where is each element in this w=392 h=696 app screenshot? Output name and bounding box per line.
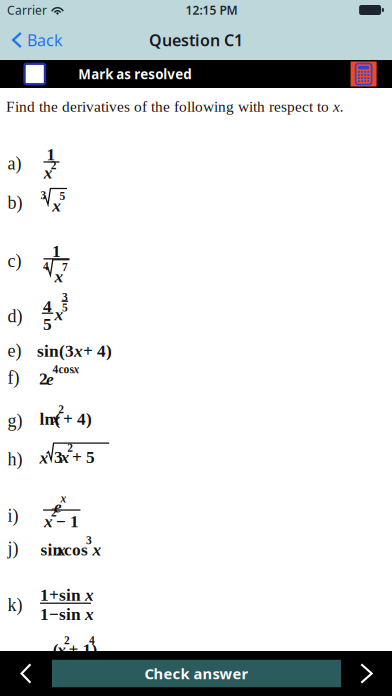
staticText: Check answer — [144, 664, 248, 683]
staticText: Back — [27, 29, 63, 51]
staticText: x — [39, 448, 48, 467]
staticText: 2 — [67, 442, 73, 454]
staticText: e) — [7, 341, 21, 361]
staticText: Mark as resolved — [78, 65, 191, 83]
button[interactable]: Next question — [341, 651, 392, 696]
staticText: 5 — [60, 190, 66, 202]
staticText: b) — [7, 193, 22, 213]
staticText: + 4) — [83, 341, 112, 360]
staticText: x — [60, 492, 66, 505]
staticText: 1−sin — [40, 605, 85, 624]
button[interactable]: Calculator — [351, 60, 377, 88]
staticText: x — [57, 640, 66, 659]
staticText: c) — [7, 251, 21, 271]
staticText: 1 — [52, 242, 61, 261]
staticText: x — [85, 605, 94, 624]
staticText: 2 — [51, 159, 57, 172]
staticText: sin — [40, 540, 62, 559]
staticText: − 1 — [56, 512, 79, 531]
staticText: 2 — [51, 506, 57, 519]
staticText: 3 — [41, 189, 47, 202]
staticText: h) — [7, 449, 22, 469]
staticText: 3 — [65, 341, 74, 360]
staticText: x. — [333, 98, 344, 115]
staticText: 2 — [58, 403, 64, 416]
staticText: + 1) — [68, 640, 97, 659]
staticText: Find the derivatives of the following wi… — [6, 98, 333, 115]
staticText: 5 — [62, 301, 68, 314]
staticText: e — [46, 370, 54, 389]
staticText: g) — [7, 411, 22, 431]
staticText: x — [54, 305, 63, 324]
staticText: x — [73, 363, 79, 376]
staticText: Question C1 — [149, 29, 243, 51]
button[interactable]: Check answer — [52, 651, 341, 696]
staticText: ln( — [39, 409, 60, 428]
staticText: 1 — [47, 145, 56, 164]
staticText: x — [74, 341, 83, 360]
staticText: ( — [53, 640, 59, 659]
staticText: 1+sin — [40, 585, 85, 604]
staticText: 3 — [86, 534, 92, 547]
staticText: x — [51, 409, 60, 428]
staticText: f) — [7, 368, 19, 388]
staticText: 3 — [62, 291, 68, 303]
staticText: 4 — [43, 297, 52, 316]
staticText: x — [60, 448, 69, 467]
staticText: 5 — [43, 315, 52, 334]
staticText: x — [44, 512, 53, 531]
staticText: 7 — [62, 261, 68, 273]
staticText: i) — [7, 506, 18, 526]
staticText: cos — [64, 540, 88, 559]
staticText: Carrier — [7, 2, 47, 18]
staticText: x — [57, 540, 66, 559]
staticText: x — [44, 163, 53, 182]
staticText: sin( — [37, 341, 65, 360]
staticText: 12:15 PM — [185, 2, 237, 18]
staticText: j) — [7, 538, 18, 558]
button[interactable]: Previous question — [0, 651, 52, 696]
button[interactable]: Back — [0, 20, 71, 60]
staticText: + 4) — [63, 409, 92, 428]
staticText: 2 — [64, 634, 70, 647]
staticText: 4cos — [52, 363, 73, 376]
staticText: 4 — [43, 260, 49, 273]
staticText: x — [55, 267, 64, 286]
staticText: e — [54, 497, 62, 516]
button[interactable]: Mark as resolved — [0, 60, 191, 88]
staticText: + 5 — [72, 448, 95, 467]
staticText: x — [52, 196, 61, 215]
staticText: 3 — [54, 448, 63, 467]
staticText: 4 — [89, 634, 95, 647]
staticText: k) — [7, 595, 22, 615]
staticText: a) — [7, 153, 21, 173]
staticText: x — [85, 585, 94, 604]
staticText: x — [92, 540, 101, 559]
staticText: d) — [7, 306, 22, 326]
staticText: 2 — [39, 369, 48, 388]
